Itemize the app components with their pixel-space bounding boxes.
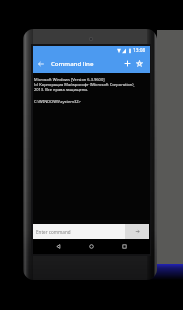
staticText: (c) Корпорация Майкрософт (Microsoft Cor… bbox=[34, 82, 135, 87]
staticText: Microsoft Windows [Version 6.3.9600] bbox=[34, 77, 105, 82]
button[interactable]: Back bbox=[51, 239, 66, 254]
button[interactable]: Add bbox=[121, 54, 133, 73]
button[interactable]: Home bbox=[84, 239, 99, 254]
staticText: Enter command bbox=[36, 229, 71, 235]
staticText: C:\WINDOWS\system32> bbox=[34, 99, 81, 104]
staticText: 13:08 bbox=[133, 47, 146, 54]
staticText: Command line bbox=[51, 59, 94, 67]
staticText: 2013. Все права защищены. bbox=[34, 87, 89, 92]
button[interactable]: Navigate up bbox=[33, 54, 48, 73]
button[interactable]: Recent apps bbox=[117, 239, 132, 254]
button[interactable]: Enter command bbox=[33, 224, 125, 239]
button[interactable]: Send command bbox=[125, 224, 149, 239]
button[interactable]: Bookmark bbox=[133, 54, 146, 73]
